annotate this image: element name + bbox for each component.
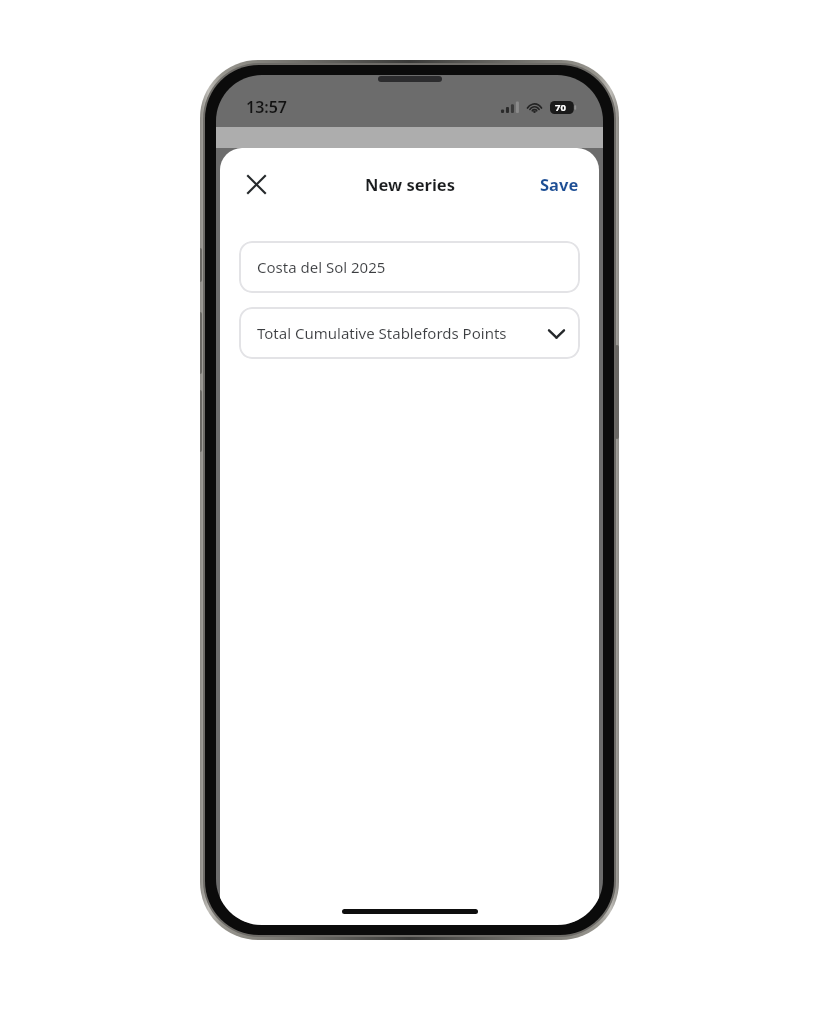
staticText: Costa del Sol 2025 bbox=[257, 257, 386, 277]
staticText: New series bbox=[365, 173, 455, 195]
button[interactable]: Save bbox=[536, 167, 583, 201]
button[interactable]: Costa del Sol 2025 bbox=[239, 241, 580, 293]
staticText: 70 bbox=[555, 101, 566, 114]
staticText: Total Cumulative Stablefords Points bbox=[257, 323, 507, 343]
staticText: 13:57 bbox=[246, 96, 288, 118]
button[interactable]: Close bbox=[236, 164, 276, 204]
staticText: Save bbox=[540, 173, 579, 195]
button[interactable]: Total Cumulative Stablefords Points bbox=[239, 307, 580, 359]
